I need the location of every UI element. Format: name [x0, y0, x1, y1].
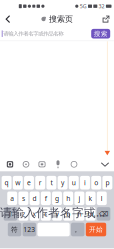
button[interactable]: o — [91, 176, 101, 189]
staticText: ⇧ — [7, 210, 13, 218]
staticText: d — [33, 194, 37, 203]
button[interactable]: m — [86, 207, 96, 221]
staticText: 123 — [23, 225, 35, 234]
staticText: 32 — [99, 3, 105, 10]
staticText: k — [89, 194, 93, 203]
button[interactable]: g — [52, 191, 62, 205]
button[interactable]: ⇧ — [4, 207, 17, 221]
button[interactable]: w — [13, 176, 23, 189]
staticText: g — [55, 194, 59, 203]
button[interactable]: Voice input — [50, 158, 66, 171]
button[interactable]: b — [63, 207, 73, 221]
button[interactable]: Share — [90, 12, 114, 27]
staticText: 请输入作者名字或作品 — [0, 204, 114, 220]
staticText: z — [22, 209, 25, 218]
button[interactable]: y — [58, 176, 67, 189]
button[interactable]: 。 — [71, 223, 84, 236]
button[interactable]: Stickers — [34, 158, 50, 171]
button[interactable]: Emoji — [18, 158, 34, 171]
staticText: t — [50, 178, 52, 187]
staticText: e — [27, 178, 31, 187]
staticText: x — [33, 209, 37, 218]
button[interactable]: s — [18, 191, 28, 205]
button[interactable]: ⌫ — [97, 207, 110, 221]
button[interactable]: j — [74, 191, 84, 205]
staticText: m — [88, 209, 94, 218]
button[interactable]: 搜索 — [91, 29, 110, 38]
button[interactable]: x — [30, 207, 39, 221]
button[interactable]: p — [102, 176, 112, 189]
button[interactable]: t — [46, 176, 56, 189]
staticText: b — [66, 209, 70, 218]
staticText: n — [77, 209, 81, 218]
button[interactable]: Back — [0, 12, 24, 27]
button[interactable]: q — [2, 176, 11, 189]
staticText: u — [72, 178, 76, 187]
staticText: 开始 — [89, 225, 103, 234]
button[interactable]: z — [18, 207, 28, 221]
button[interactable]: l — [97, 191, 107, 205]
staticText: r — [39, 178, 42, 187]
staticText: o — [94, 178, 98, 187]
button[interactable]: 符 — [8, 223, 21, 236]
staticText: p — [105, 178, 109, 187]
staticText: j — [78, 194, 80, 203]
staticText: i — [84, 178, 86, 187]
staticText: 符 — [11, 225, 18, 234]
staticText: h — [66, 194, 70, 203]
staticText: 。 — [74, 225, 81, 234]
button[interactable]: 开始 — [86, 223, 106, 236]
staticText: l — [101, 194, 103, 203]
staticText: w — [15, 178, 20, 187]
staticText: 搜索 — [94, 30, 108, 38]
staticText: a — [10, 194, 14, 203]
staticText: q — [5, 178, 9, 187]
staticText: v — [55, 209, 58, 218]
button[interactable]: h — [63, 191, 73, 205]
staticText: 5G — [80, 3, 87, 10]
button[interactable]: d — [30, 191, 39, 205]
button[interactable]: e — [24, 176, 34, 189]
staticText: 搜索页 — [49, 14, 73, 24]
staticText: y — [61, 178, 64, 187]
button[interactable]: Keyboard type — [2, 158, 18, 171]
button[interactable]: n — [74, 207, 84, 221]
button[interactable] — [37, 223, 70, 236]
button[interactable]: c — [41, 207, 51, 221]
button[interactable]: r — [35, 176, 45, 189]
button[interactable]: a — [7, 191, 17, 205]
button[interactable]: u — [69, 176, 79, 189]
button[interactable]: i — [80, 176, 90, 189]
button[interactable]: 123 — [23, 223, 36, 236]
button[interactable]: v — [52, 207, 62, 221]
staticText: c — [44, 209, 47, 218]
button[interactable]: Translate — [66, 158, 82, 171]
staticText: s — [22, 194, 25, 203]
button[interactable]: Hide keyboard — [98, 158, 112, 171]
staticText: 请输入作者名字或作品名称 — [3, 30, 63, 37]
staticText: f — [45, 194, 47, 203]
button[interactable]: f — [41, 191, 51, 205]
staticText: ⌫ — [99, 210, 108, 218]
button[interactable]: k — [86, 191, 96, 205]
